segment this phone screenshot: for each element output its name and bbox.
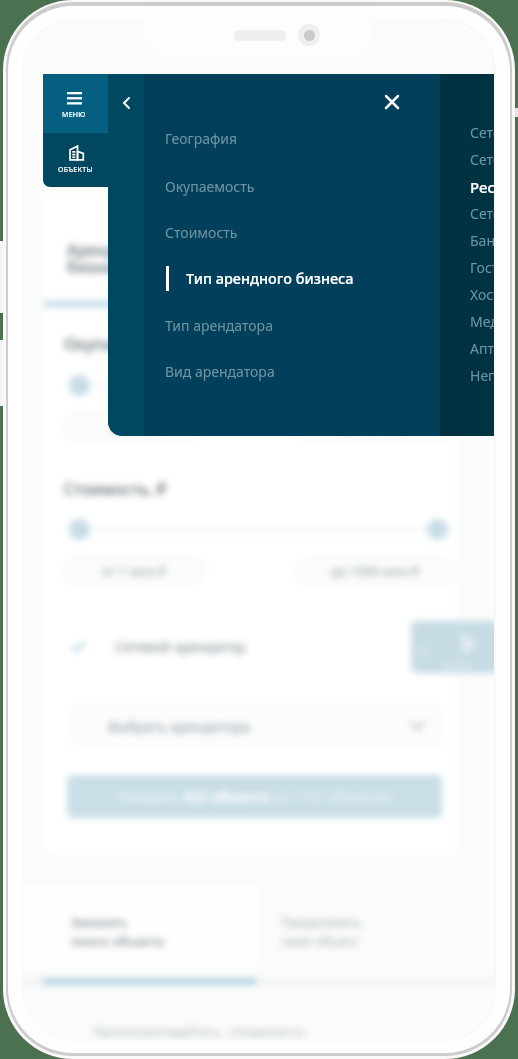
staticText: Аптека [470, 339, 494, 358]
staticText: Вид арендатора [165, 362, 275, 381]
staticText: Показать [117, 787, 183, 806]
button[interactable]: Сетевой магазин [470, 200, 494, 227]
staticText: Сетевой продуктовый [470, 123, 494, 142]
button[interactable]: Окупаемость [153, 168, 403, 204]
button[interactable]: Банк [470, 227, 494, 254]
staticText: Окупаемость, лет [64, 333, 203, 355]
button[interactable]: Вид арендатора [153, 353, 403, 389]
staticText: 422 объекта [183, 787, 270, 806]
staticText: Окупаемость [165, 177, 255, 196]
staticText: Стоимость [165, 223, 238, 242]
staticText: из 1147 объектов [270, 787, 392, 806]
staticText: Заказать [71, 913, 128, 931]
button[interactable]: МЕНЮ [43, 74, 108, 133]
button[interactable]: Непродуктовый [470, 362, 494, 389]
button[interactable]: Тип арендного бизнеса [153, 260, 403, 296]
staticText: Арендный [67, 239, 149, 261]
staticText: Тип арендатора [165, 316, 273, 335]
staticText: бизнес [67, 256, 122, 278]
staticText: Гостиница [470, 258, 494, 277]
button[interactable]: Аптека [470, 335, 494, 362]
staticText: Проконсультируйтесь, специалисты [93, 1023, 306, 1039]
staticText: Стоимость, ₽ [64, 478, 167, 500]
staticText: Выбрать арендатора [108, 717, 250, 736]
staticText: Тип арендного бизнеса [186, 268, 354, 288]
button[interactable]: Назад [113, 90, 140, 116]
button[interactable]: Стоимость [153, 214, 403, 250]
staticText: ОБЪЕКТЫ [58, 165, 93, 175]
staticText: Ресторан / кафе [470, 177, 494, 197]
button[interactable]: Закрыть [378, 88, 406, 116]
staticText: Предложить [281, 913, 362, 931]
button[interactable]: Сетевой продуктовый [470, 119, 494, 146]
button[interactable]: Сетевой алкомаркет [470, 146, 494, 173]
button[interactable]: ОБЪЕКТЫ [43, 133, 108, 187]
staticText: Хостел [470, 285, 494, 304]
button[interactable]: Ресторан / кафе [470, 173, 494, 200]
staticText: каталог [443, 659, 473, 670]
staticText: Сетевой арендатор [115, 637, 247, 656]
button[interactable]: Тип арендатора [153, 307, 403, 343]
button[interactable]: География [153, 120, 403, 156]
staticText: свой объект [281, 932, 360, 950]
staticText: Непродуктовый [470, 366, 494, 385]
staticText: География [165, 129, 238, 148]
staticText: Банк [470, 231, 494, 250]
staticText: Сетевой магазин [470, 204, 494, 223]
staticText: Сетевой алкомаркет [470, 150, 494, 169]
staticText: Медцентр [470, 312, 494, 331]
button[interactable]: Медцентр [470, 308, 494, 335]
staticText: поиск объекта [71, 932, 165, 950]
staticText: от 1 млн ₽ [102, 562, 167, 580]
button[interactable]: Гостиница [470, 254, 494, 281]
staticText: от 5 лет [110, 418, 159, 436]
button[interactable]: Хостел [470, 281, 494, 308]
staticText: до 1000 млн ₽ [331, 562, 420, 580]
staticText: МЕНЮ [62, 110, 86, 120]
